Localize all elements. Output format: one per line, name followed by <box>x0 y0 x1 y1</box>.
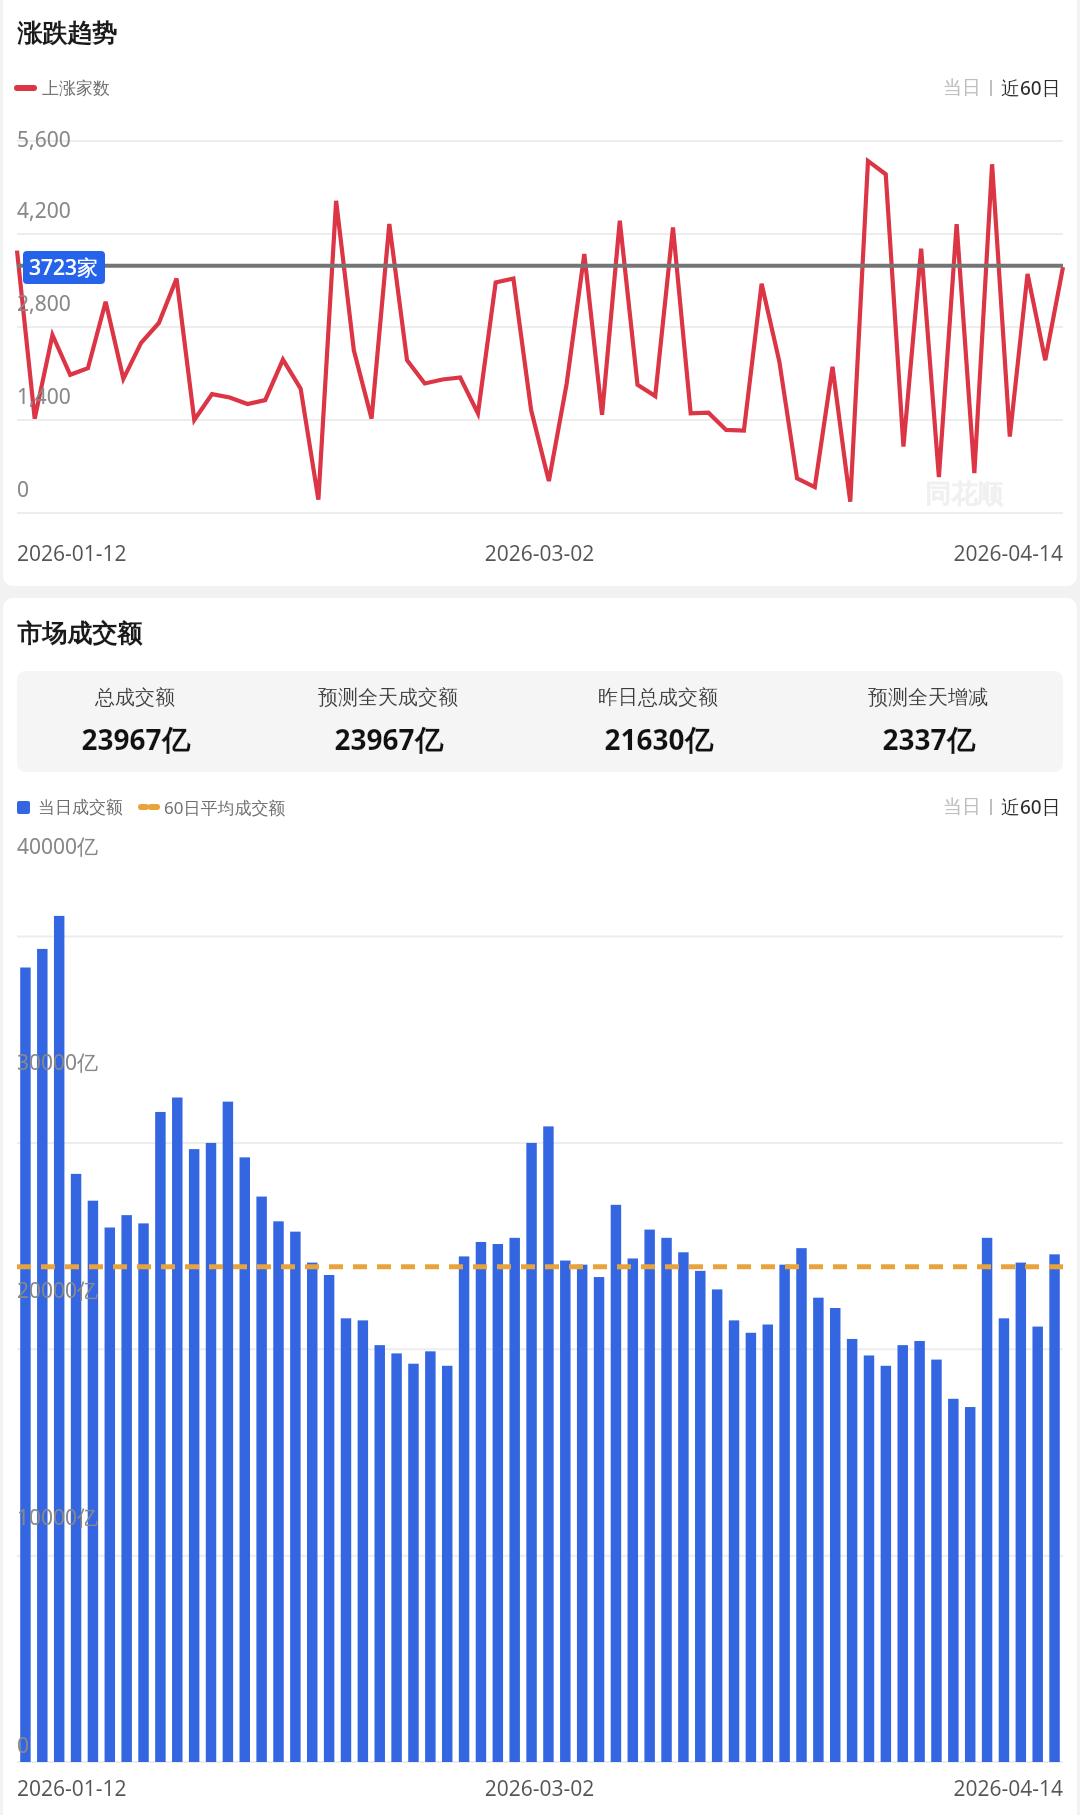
staticText: 4,200 <box>17 196 71 225</box>
staticText: 2026-01-12 <box>17 539 365 568</box>
staticText: 21630亿 <box>604 720 713 758</box>
staticText: 60日平均成交额 <box>164 796 286 819</box>
staticText: 23967亿 <box>334 720 443 758</box>
staticText: 23967亿 <box>81 720 190 758</box>
staticText: 1,400 <box>17 382 71 411</box>
staticText: 0 <box>17 475 30 504</box>
button[interactable]: 当日 <box>941 74 983 102</box>
staticText: 当日 <box>943 76 981 100</box>
staticText: 近60日 <box>1001 794 1061 820</box>
staticText: 3723家 <box>29 253 99 282</box>
staticText: 2,800 <box>17 289 71 318</box>
staticText: 20000亿 <box>17 1276 99 1305</box>
staticText: 40000亿 <box>17 832 99 861</box>
staticText: 2026-04-14 <box>714 1774 1063 1803</box>
staticText: 近60日 <box>1001 75 1061 101</box>
staticText: 昨日总成交额 <box>598 685 718 710</box>
staticText: 2026-03-02 <box>365 539 714 568</box>
staticText: 2337亿 <box>882 720 975 758</box>
staticText: 2026-04-14 <box>714 539 1063 568</box>
staticText: 当日 <box>943 795 981 819</box>
staticText: 10000亿 <box>17 1503 99 1532</box>
button[interactable]: 近60日 <box>999 73 1063 103</box>
button[interactable]: 近60日 <box>999 792 1063 822</box>
staticText: 市场成交额 <box>17 618 142 649</box>
staticText: 5,600 <box>17 125 71 154</box>
staticText: 当日成交额 <box>38 797 123 818</box>
staticText: 同花顺 <box>925 478 1003 511</box>
staticText: 预测全天成交额 <box>318 685 458 710</box>
staticText: 0 <box>17 1731 30 1760</box>
button[interactable]: 当日 <box>941 793 983 821</box>
staticText: 2026-03-02 <box>365 1774 714 1803</box>
staticText: 上涨家数 <box>42 78 110 99</box>
staticText: 2026-01-12 <box>17 1774 365 1803</box>
staticText: 30000亿 <box>17 1048 99 1077</box>
staticText: 总成交额 <box>95 685 175 710</box>
staticText: 涨跌趋势 <box>17 18 117 49</box>
staticText: 预测全天增减 <box>868 685 988 710</box>
